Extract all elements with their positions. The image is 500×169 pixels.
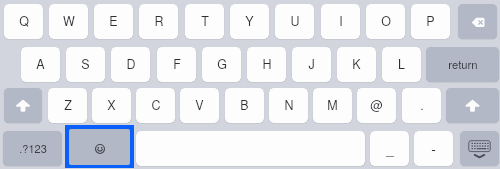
- staticText: .: [420, 96, 424, 114]
- button[interactable]: R: [139, 4, 178, 39]
- button[interactable]: Emoji keyboard: [65, 125, 134, 168]
- staticText: H: [262, 55, 272, 73]
- button[interactable]: X: [92, 88, 131, 123]
- staticText: O: [381, 12, 391, 30]
- staticText: K: [352, 55, 361, 73]
- staticText: E: [109, 12, 118, 30]
- button[interactable]: L: [382, 47, 421, 82]
- staticText: L: [398, 55, 405, 73]
- staticText: B: [240, 96, 249, 114]
- button[interactable]: U: [275, 4, 314, 39]
- button[interactable]: J: [292, 47, 331, 82]
- button[interactable]: O: [366, 4, 405, 39]
- staticText: _: [386, 138, 394, 157]
- staticText: T: [201, 12, 209, 30]
- button[interactable]: Shift: [4, 88, 42, 123]
- staticText: A: [36, 55, 45, 73]
- staticText: Z: [64, 96, 72, 114]
- staticText: J: [308, 55, 315, 73]
- button[interactable]: E: [94, 4, 133, 39]
- button[interactable]: .: [402, 88, 441, 123]
- staticText: I: [339, 12, 343, 30]
- staticText: N: [284, 96, 294, 114]
- button[interactable]: I: [321, 4, 360, 39]
- button[interactable]: Y: [230, 4, 269, 39]
- button[interactable]: H: [247, 47, 286, 82]
- staticText: V: [195, 96, 204, 114]
- staticText: return: [448, 56, 478, 72]
- button[interactable]: V: [180, 88, 219, 123]
- button[interactable]: .?123: [3, 131, 62, 166]
- button[interactable]: Shift: [446, 88, 499, 123]
- button[interactable]: B: [225, 88, 264, 123]
- staticText: Q: [19, 12, 29, 30]
- button[interactable]: Q: [4, 4, 43, 39]
- button[interactable]: Hide keyboard: [460, 131, 499, 166]
- staticText: -: [431, 138, 436, 157]
- button[interactable]: W: [49, 4, 88, 39]
- staticText: X: [107, 96, 116, 114]
- button[interactable]: Backspace: [458, 4, 497, 39]
- button[interactable]: Z: [48, 88, 87, 123]
- staticText: Y: [245, 12, 254, 30]
- staticText: W: [63, 12, 75, 30]
- staticText: F: [173, 55, 181, 73]
- button[interactable]: D: [111, 47, 150, 82]
- button[interactable]: P: [411, 4, 450, 39]
- staticText: D: [126, 55, 136, 73]
- button[interactable]: K: [337, 47, 376, 82]
- button[interactable]: C: [136, 88, 175, 123]
- button[interactable]: -: [414, 131, 453, 166]
- button[interactable]: _: [370, 131, 409, 166]
- staticText: P: [426, 12, 435, 30]
- button[interactable]: T: [185, 4, 224, 39]
- button[interactable]: @: [357, 88, 396, 123]
- staticText: S: [81, 55, 90, 73]
- staticText: .?123: [19, 140, 47, 156]
- button[interactable]: return: [426, 47, 499, 82]
- button[interactable]: A: [21, 47, 60, 82]
- staticText: M: [327, 96, 338, 114]
- button[interactable]: F: [157, 47, 196, 82]
- button[interactable]: N: [269, 88, 308, 123]
- staticText: @: [370, 96, 383, 114]
- staticText: G: [217, 55, 227, 73]
- staticText: R: [154, 12, 164, 30]
- staticText: U: [290, 12, 300, 30]
- button[interactable]: G: [202, 47, 241, 82]
- button[interactable]: S: [66, 47, 105, 82]
- staticText: C: [151, 96, 161, 114]
- button[interactable]: M: [313, 88, 352, 123]
